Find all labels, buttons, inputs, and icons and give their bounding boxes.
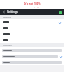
button[interactable]	[0, 31, 64, 37]
button[interactable]: Back	[2, 10, 6, 14]
staticText: General	[3, 16, 12, 19]
staticText: It's not 100%	[24, 2, 41, 6]
other: Selected	[58, 21, 61, 24]
button[interactable]	[0, 47, 64, 53]
button[interactable]: Confirm	[0, 53, 64, 59]
button[interactable]: Selected	[0, 19, 64, 25]
other: Confirm	[59, 55, 62, 58]
button[interactable]	[0, 37, 64, 43]
button[interactable]	[0, 25, 64, 31]
staticText: Settings	[7, 10, 58, 14]
button[interactable]: Connected	[58, 10, 62, 14]
button[interactable]	[0, 59, 64, 65]
staticText: supported	[25, 7, 39, 8]
staticText: Account	[3, 44, 12, 47]
